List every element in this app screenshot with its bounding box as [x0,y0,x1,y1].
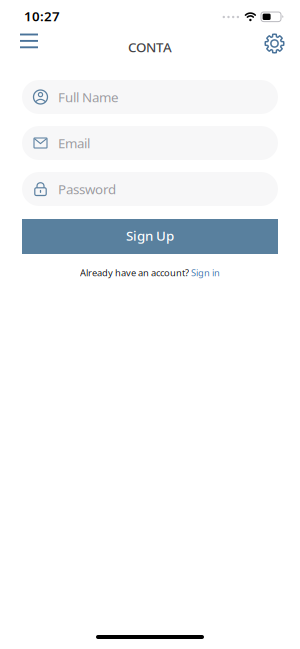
staticText: Already have an account? [80,266,189,279]
button[interactable]: Full Name [22,80,278,114]
button[interactable]: Settings [264,33,300,54]
staticText: Sign in [191,266,220,279]
staticText: Sign Up [126,227,174,244]
button[interactable]: Sign in [191,266,220,279]
staticText: 10:27 [24,7,60,25]
staticText: Full Name [58,88,119,106]
staticText: CONTA [128,38,172,56]
staticText: Email [58,134,90,152]
button[interactable]: Email [22,126,278,160]
button[interactable]: Sign Up [22,219,278,254]
staticText: Password [58,180,116,198]
button[interactable]: Password [22,172,278,206]
button[interactable]: Menu [0,33,38,47]
